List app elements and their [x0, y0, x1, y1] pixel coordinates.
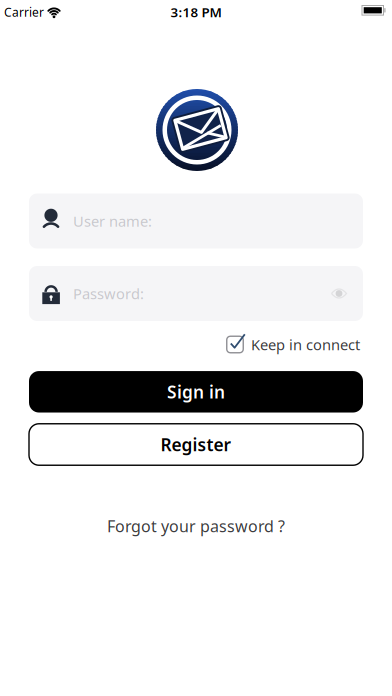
- button[interactable]: Register: [29, 424, 363, 465]
- staticText: 3:18 PM: [170, 3, 221, 21]
- staticText: Keep in connect: [251, 335, 360, 354]
- button[interactable]: Show password: [331, 288, 363, 299]
- staticText: Register: [160, 433, 231, 456]
- staticText: Password:: [73, 284, 144, 303]
- staticText: User name:: [73, 211, 152, 231]
- staticText: Sign in: [167, 380, 225, 403]
- staticText: Forgot your password ?: [107, 515, 285, 537]
- button[interactable]: Keep in connect: [226, 334, 360, 354]
- button[interactable]: Sign in: [29, 371, 363, 413]
- staticText: Carrier: [4, 4, 44, 20]
- button[interactable]: Forgot your password ?: [107, 515, 285, 537]
